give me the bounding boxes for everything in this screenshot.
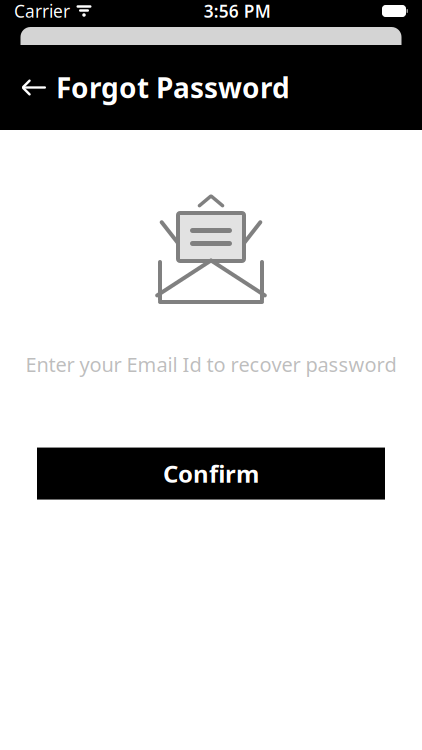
staticText: Carrier xyxy=(14,0,70,22)
button[interactable]: Confirm xyxy=(37,448,385,500)
button[interactable]: Back xyxy=(12,65,56,109)
staticText: Forgot Password xyxy=(56,69,290,106)
staticText: Enter your Email Id to recover password xyxy=(25,351,396,378)
staticText: Confirm xyxy=(163,458,259,489)
staticText: 3:56 PM xyxy=(204,0,271,22)
